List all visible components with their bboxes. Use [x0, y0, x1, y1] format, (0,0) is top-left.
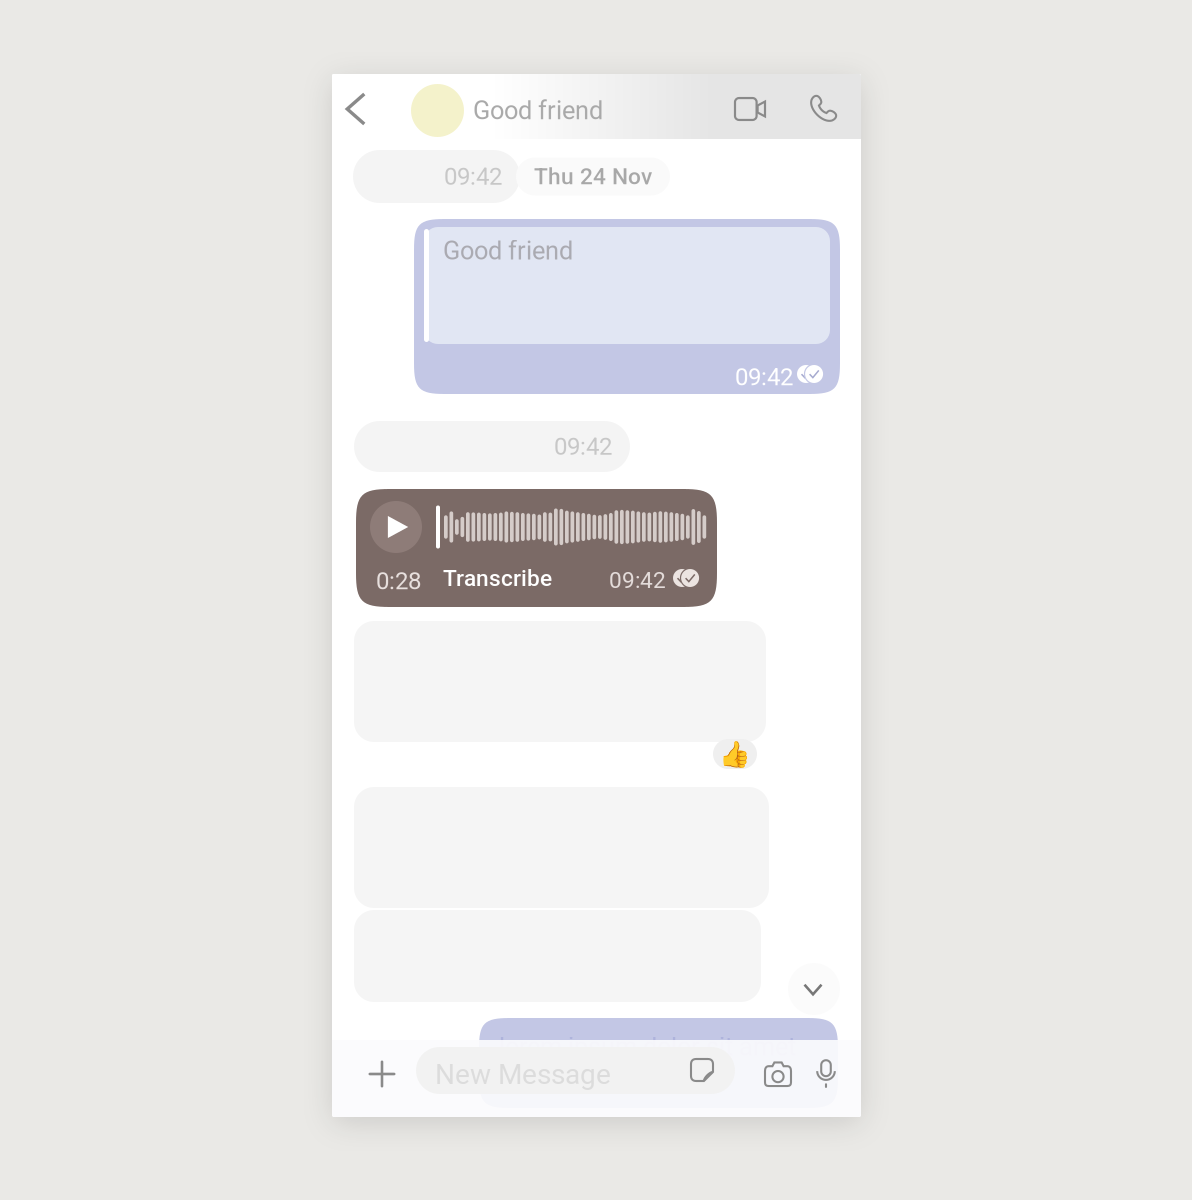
- button[interactable]: Record voice message: [806, 1051, 846, 1097]
- button[interactable]: Scroll to bottom: [788, 963, 840, 1015]
- button[interactable]: Video call: [726, 85, 774, 133]
- button[interactable]: New Message: [416, 1047, 735, 1094]
- staticText: New Message: [435, 1058, 611, 1091]
- staticText: 09:42: [554, 432, 612, 460]
- button[interactable]: Voice call: [799, 85, 847, 133]
- staticText: 09:42: [735, 363, 793, 391]
- staticText: Good friend: [443, 236, 573, 266]
- staticText: lorem ipsum dolor sit amet: [499, 1032, 796, 1062]
- staticText: Good friend: [473, 96, 603, 125]
- button[interactable]: Attach: [358, 1050, 406, 1098]
- button[interactable]: Camera: [755, 1051, 801, 1097]
- staticText: Thu 24 Nov: [534, 163, 652, 190]
- staticText: Transcribe: [443, 565, 552, 592]
- staticText: 👍: [719, 739, 751, 768]
- button[interactable]: Back: [334, 88, 378, 132]
- button[interactable]: Good friend: [411, 84, 631, 137]
- staticText: 09:42: [609, 567, 666, 594]
- staticText: 09:42: [444, 162, 502, 190]
- staticText: 0:28: [376, 567, 421, 595]
